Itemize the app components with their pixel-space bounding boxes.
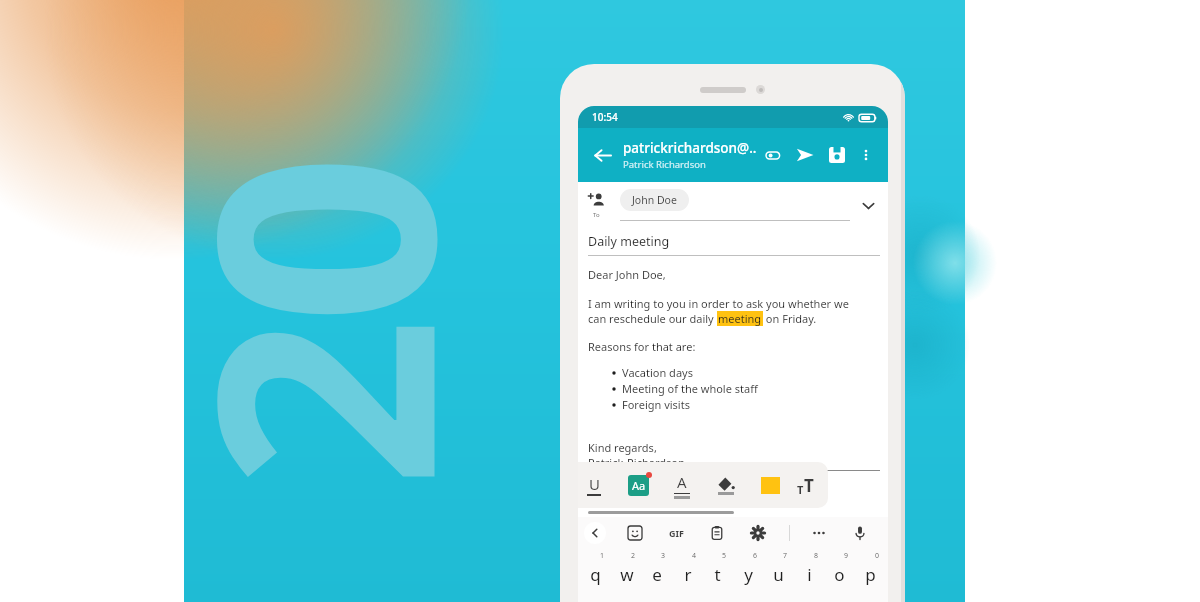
button[interactable]: 3 xyxy=(642,549,671,593)
button[interactable]: 6 xyxy=(734,549,763,593)
staticText: 2 xyxy=(631,551,636,561)
staticText: T xyxy=(797,482,804,497)
button[interactable]: Underline xyxy=(578,465,616,505)
staticText: Patrick xyxy=(588,455,627,470)
staticText: on Friday. xyxy=(763,311,817,326)
button[interactable]: Back xyxy=(584,522,606,544)
staticText: w xyxy=(620,563,634,586)
staticText: 3 xyxy=(661,551,666,561)
button[interactable]: Highlight swatch xyxy=(748,465,792,505)
staticText: Aa xyxy=(632,478,646,493)
button[interactable]: 1 xyxy=(581,549,610,593)
staticText: 0 xyxy=(875,551,880,561)
button[interactable]: 5 xyxy=(703,549,732,593)
staticText: T xyxy=(804,474,814,497)
staticText: John Doe xyxy=(632,193,677,207)
staticText: i xyxy=(807,563,812,586)
staticText: meeting xyxy=(718,311,762,326)
staticText: can reschedule our daily xyxy=(588,311,717,326)
button[interactable]: Text color xyxy=(660,465,704,505)
staticText: 7 xyxy=(783,551,788,561)
staticText: Richardson xyxy=(627,455,685,470)
button[interactable]: Settings xyxy=(746,521,770,545)
staticText: GIF xyxy=(669,527,684,539)
staticText: Dear John Doe, xyxy=(588,267,666,282)
staticText: Kind regards, xyxy=(588,440,657,455)
button[interactable]: Stickers xyxy=(623,521,647,545)
button[interactable]: Highlight color xyxy=(704,465,748,505)
staticText: 10:54 xyxy=(592,110,618,124)
button[interactable]: Voice input xyxy=(848,521,872,545)
button[interactable]: GIF xyxy=(664,521,688,545)
staticText: 5 xyxy=(722,551,727,561)
staticText: 4 xyxy=(692,551,697,561)
button[interactable]: Expand recipients xyxy=(855,192,881,218)
staticText: Reasons for that are: xyxy=(588,339,696,354)
staticText: o xyxy=(834,563,845,586)
button[interactable]: 7 xyxy=(764,549,793,593)
staticText: 9 xyxy=(844,551,849,561)
staticText: p xyxy=(865,563,876,586)
staticText: 6 xyxy=(753,551,758,561)
staticText: U xyxy=(589,474,600,494)
button[interactable]: Send xyxy=(791,141,819,169)
staticText: A xyxy=(677,472,687,492)
staticText: To xyxy=(593,211,600,219)
button[interactable]: More xyxy=(807,521,831,545)
staticText: t xyxy=(714,563,721,586)
staticText: u xyxy=(773,563,784,586)
staticText: y xyxy=(744,563,753,586)
button[interactable]: Attach file xyxy=(759,141,787,169)
button[interactable]: More options xyxy=(853,142,879,168)
staticText: Foreign visits xyxy=(622,397,690,412)
staticText: 8 xyxy=(814,551,819,561)
staticText: Patrick Richardson xyxy=(623,158,706,171)
staticText: Vacation days xyxy=(622,365,693,380)
staticText: e xyxy=(652,563,662,586)
button[interactable]: John Doe xyxy=(620,189,689,211)
button[interactable]: Clipboard xyxy=(705,521,729,545)
staticText: 1 xyxy=(600,551,605,561)
staticText: 20 xyxy=(113,160,522,488)
staticText: patrickrichardson@... xyxy=(623,139,759,157)
button[interactable]: 8 xyxy=(795,549,824,593)
button[interactable]: Save draft xyxy=(823,141,851,169)
staticText: I am writing to you in order to ask you … xyxy=(588,296,849,311)
button[interactable]: Text style xyxy=(616,465,660,505)
button[interactable]: Daily meeting xyxy=(588,233,670,250)
button[interactable]: 9 xyxy=(825,549,854,593)
staticText: Meeting of the whole staff xyxy=(622,381,758,396)
button[interactable]: Back xyxy=(587,140,617,170)
button[interactable]: Text size xyxy=(792,465,818,505)
button[interactable]: 0 xyxy=(856,549,885,593)
button[interactable]: 2 xyxy=(612,549,641,593)
button[interactable]: 4 xyxy=(673,549,702,593)
staticText: q xyxy=(590,563,601,586)
staticText: r xyxy=(684,563,692,586)
